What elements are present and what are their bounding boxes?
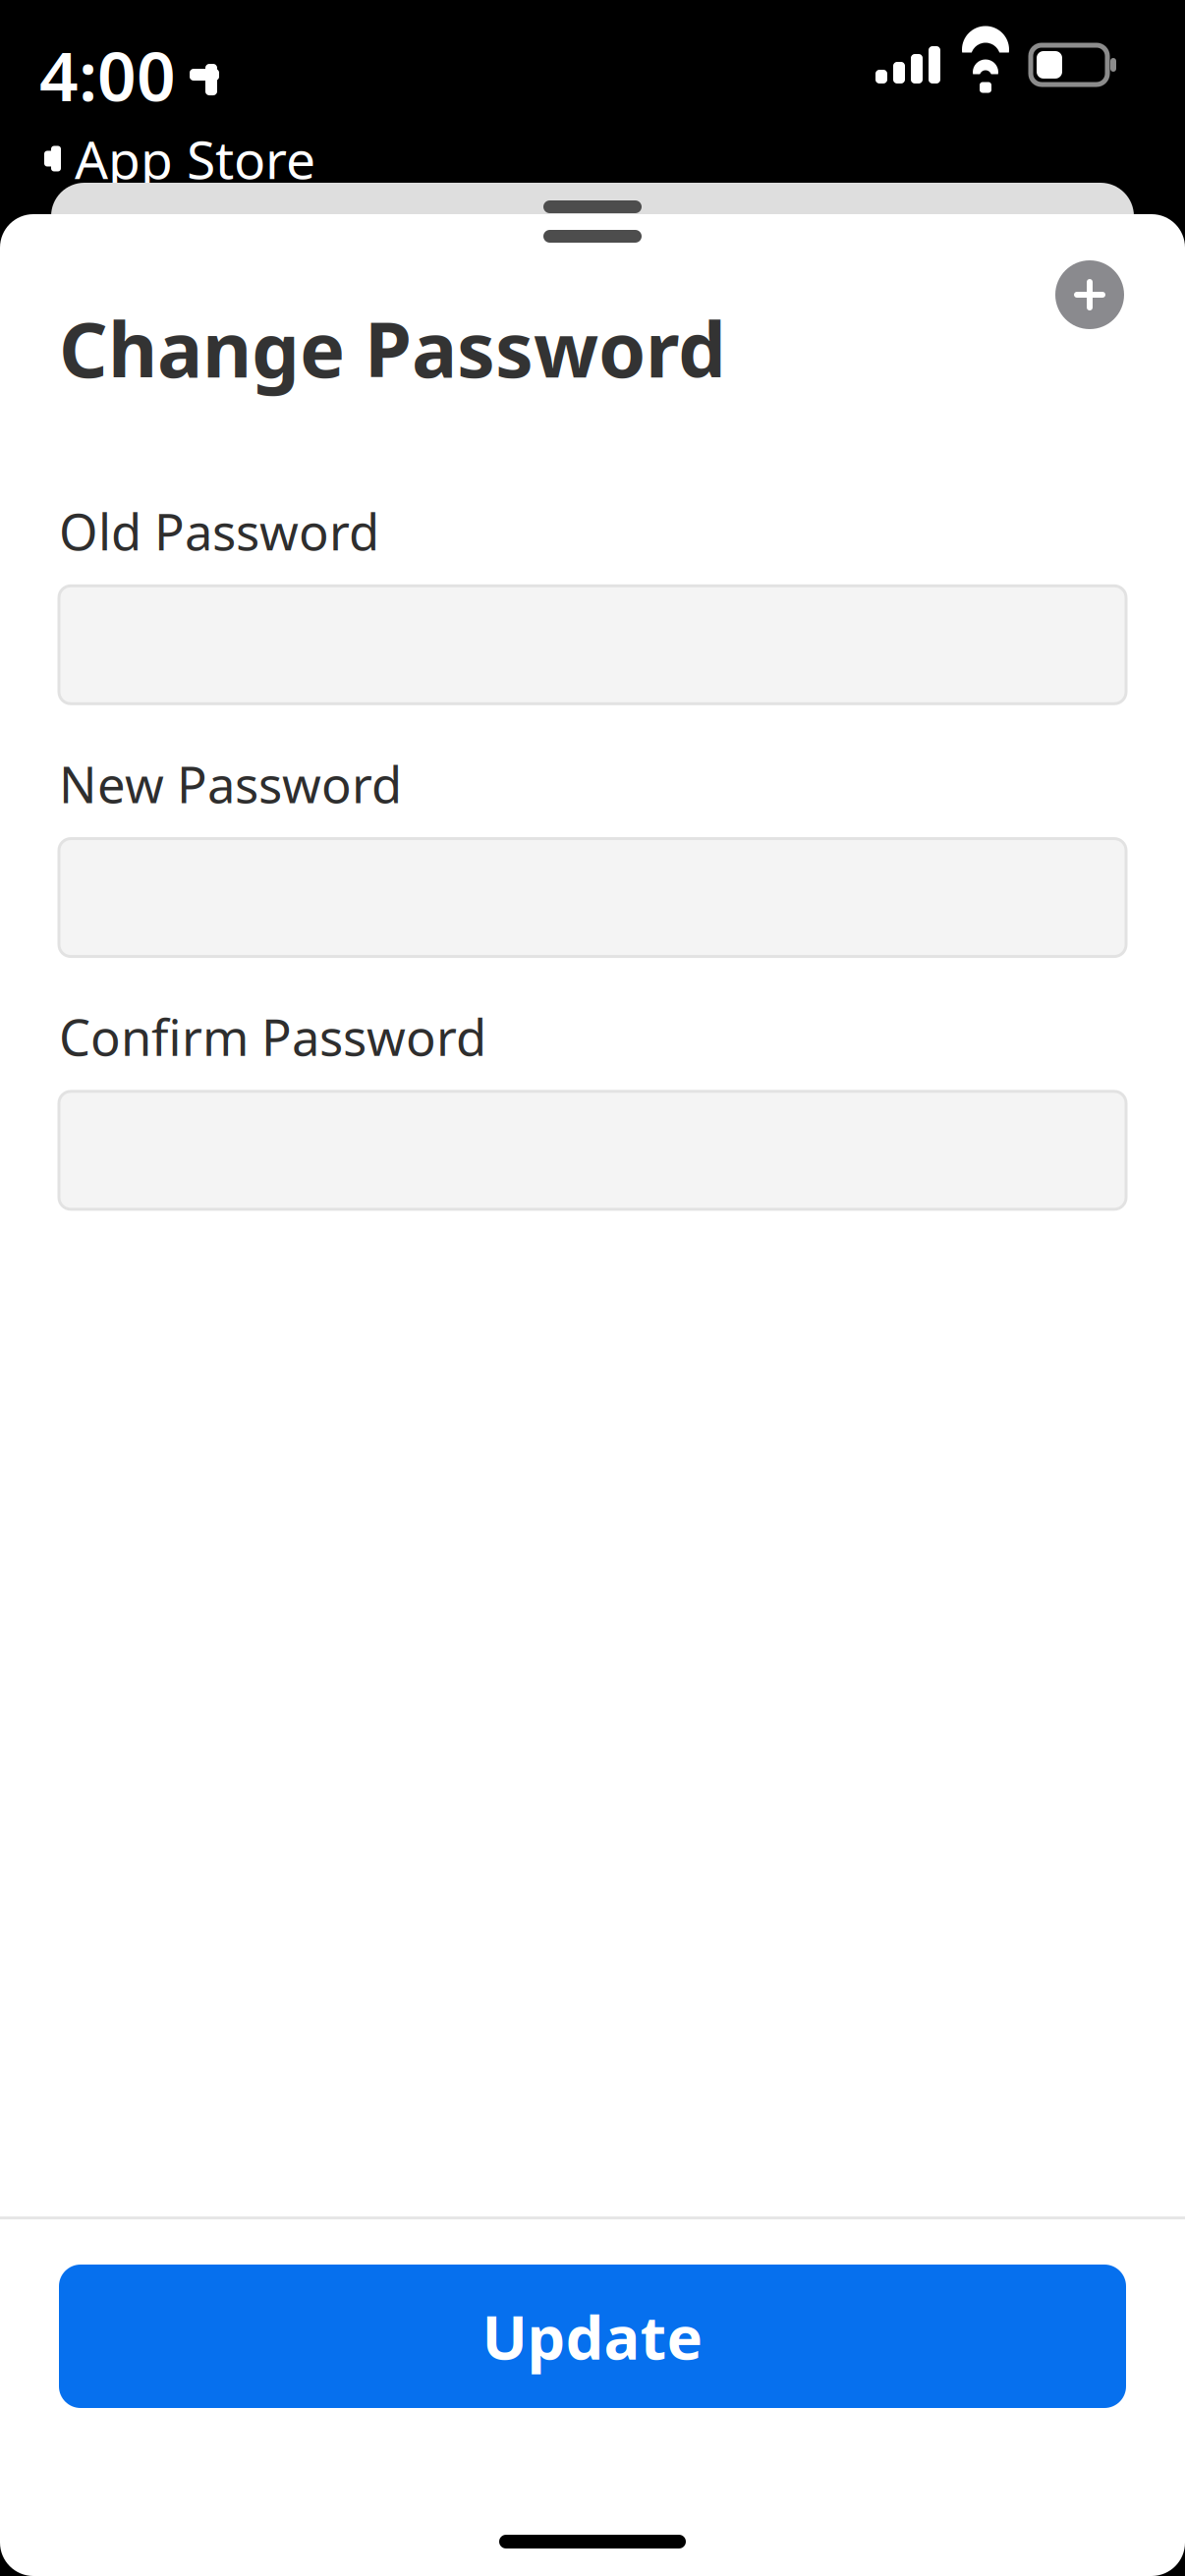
staticText: App Store (75, 124, 315, 193)
staticText: Confirm Password (59, 1004, 486, 1070)
button[interactable]: Close (1055, 260, 1124, 329)
button[interactable]: App Store (39, 124, 315, 193)
staticText: 4:00 (39, 29, 176, 120)
button[interactable]: New Password (59, 839, 1126, 957)
staticText: Update (482, 2296, 703, 2376)
staticText: Old Password (59, 498, 379, 564)
staticText: New Password (59, 751, 402, 817)
button[interactable]: Update (59, 2265, 1126, 2408)
staticText: Change Password (59, 298, 726, 399)
